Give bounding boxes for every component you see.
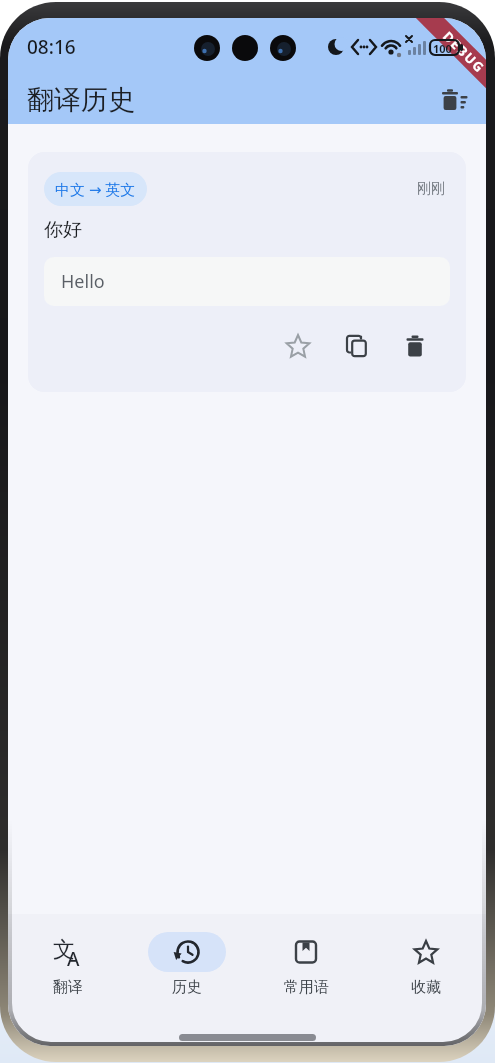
button[interactable]: 文 [8,932,127,997]
staticText: DEBUG [439,27,486,77]
staticText: 翻译 [53,978,83,997]
staticText: 常用语 [284,978,329,997]
staticText: A [67,946,80,972]
staticText: 收藏 [411,978,441,997]
staticText: 100 [433,41,452,56]
staticText: 翻译历史 [27,83,135,117]
button[interactable]: 常用语 [246,932,366,997]
staticText: 历史 [172,978,202,997]
button[interactable] [278,326,318,366]
staticText: 中文 → 英文 [55,179,136,199]
button[interactable]: 历史 [127,932,246,997]
button[interactable] [436,82,472,118]
button[interactable] [396,326,436,366]
button[interactable]: 收藏 [366,932,486,997]
button[interactable]: 中文 → 英文 [28,152,466,392]
button[interactable] [337,326,377,366]
staticText: 文 [53,936,75,964]
staticText: Hello [61,269,105,294]
staticText: 你好 [44,218,82,242]
staticText: 刚刚 [417,180,445,198]
staticText: 08:16 [27,34,76,60]
